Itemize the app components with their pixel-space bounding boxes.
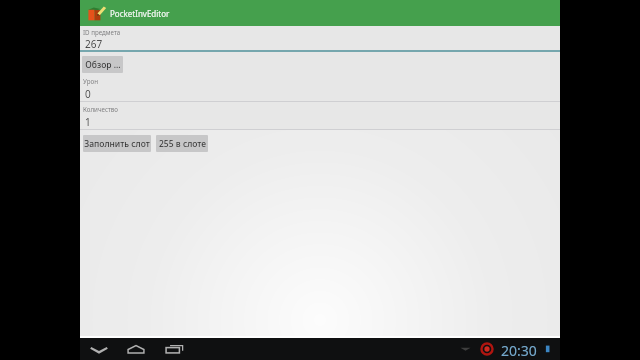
button[interactable]: PocketInvEditor — [80, 0, 560, 26]
staticText: 1 — [85, 115, 91, 129]
staticText: PocketInvEditor — [110, 8, 170, 19]
staticText: 20:30 — [501, 341, 537, 360]
staticText: ID предмета — [83, 28, 121, 36]
button[interactable]: Обзор ... — [82, 56, 123, 73]
button[interactable]: Заполнить слот — [83, 135, 151, 152]
button[interactable]: Recents — [162, 338, 186, 360]
button[interactable]: Back — [87, 338, 111, 360]
staticText: 0 — [85, 87, 91, 101]
staticText: Количество — [83, 105, 119, 113]
staticText: Обзор ... — [85, 59, 121, 71]
staticText: 255 в слоте — [159, 138, 206, 150]
button[interactable]: Home — [124, 338, 148, 360]
staticText: 267 — [85, 37, 103, 51]
staticText: Заполнить слот — [84, 138, 150, 150]
button[interactable]: 255 в слоте — [156, 135, 208, 152]
staticText: Урон — [83, 77, 98, 85]
